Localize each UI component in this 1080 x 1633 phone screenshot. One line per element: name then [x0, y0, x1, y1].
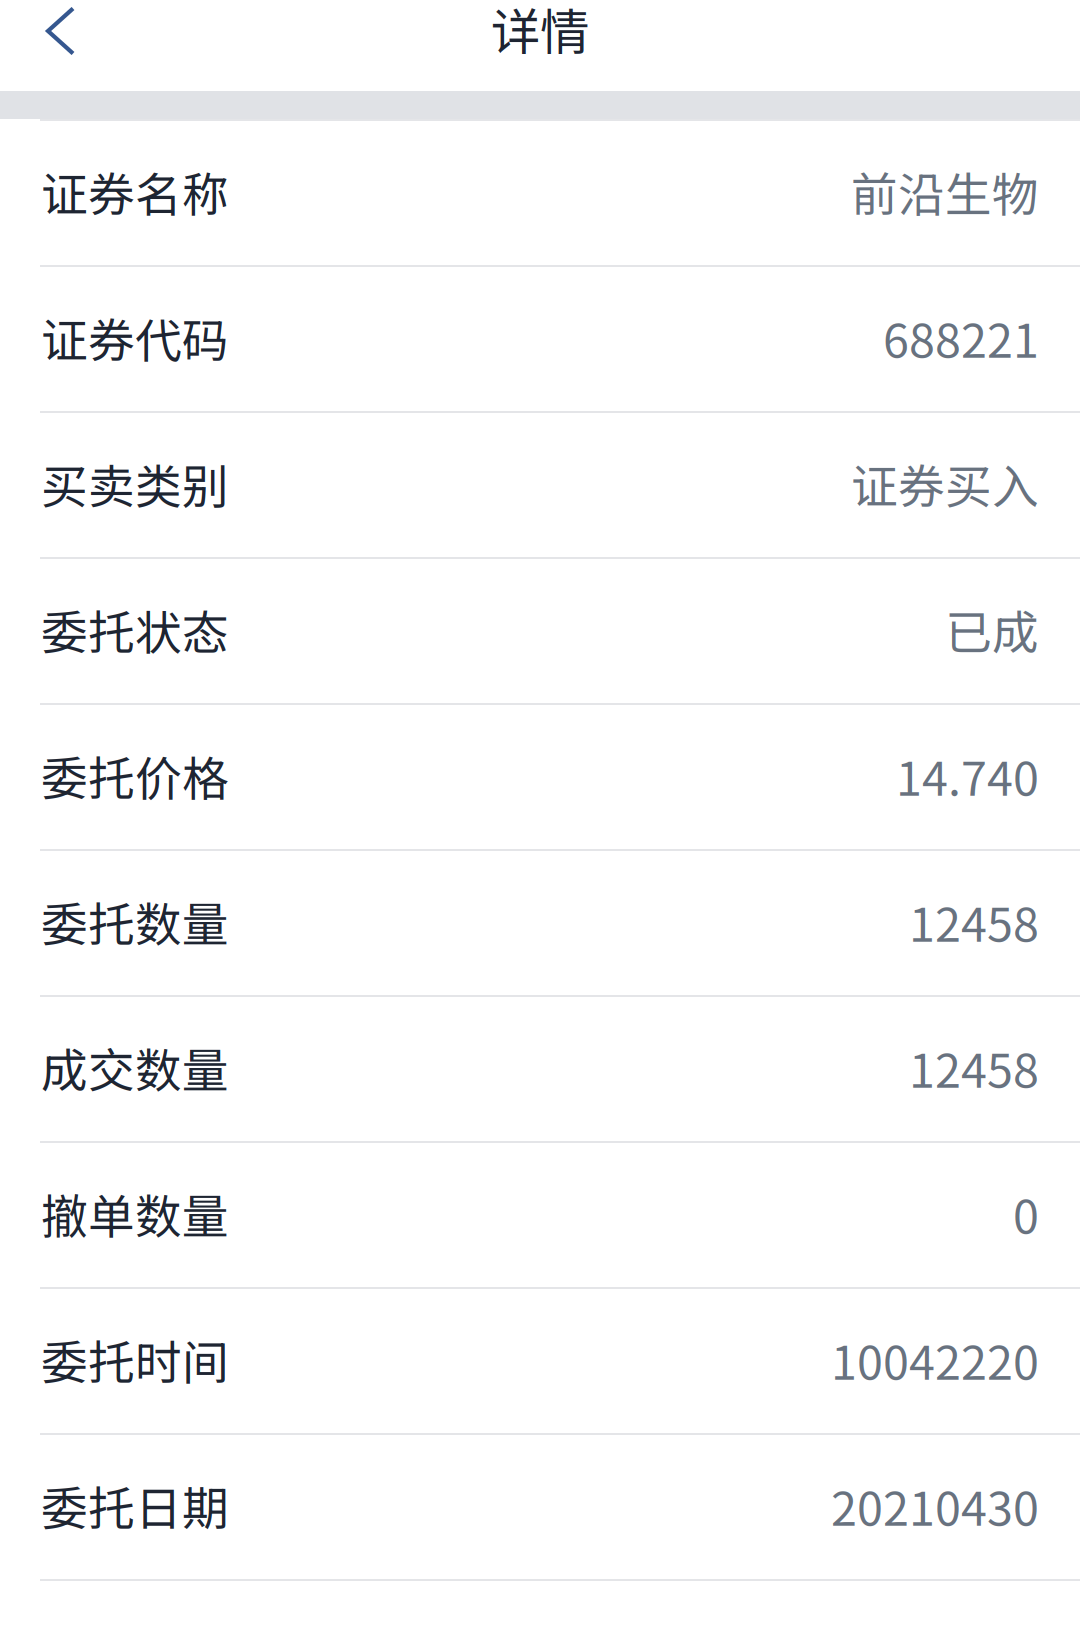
staticText: 委托价格 — [41, 742, 229, 809]
button[interactable]: 委托数量 — [0, 851, 1080, 997]
staticText: 撤单数量 — [41, 1180, 229, 1247]
staticText: 已成 — [945, 596, 1039, 663]
button[interactable]: 返回 — [0, 0, 121, 62]
staticText: 委托日期 — [41, 1472, 229, 1539]
staticText: 688221 — [883, 304, 1039, 371]
staticText: 买卖类别 — [41, 450, 229, 517]
staticText: 委托状态 — [41, 596, 229, 663]
staticText: 证券代码 — [41, 304, 229, 371]
staticText: 详情 — [491, 0, 589, 64]
staticText: 14.740 — [896, 742, 1039, 809]
button[interactable]: 委托价格 — [0, 705, 1080, 851]
staticText: 委托数量 — [41, 888, 229, 955]
button[interactable]: 证券名称 — [0, 119, 1080, 267]
button[interactable]: 委托时间 — [0, 1289, 1080, 1435]
staticText: 成交数量 — [41, 1034, 229, 1101]
staticText: 12458 — [909, 888, 1039, 955]
button[interactable]: 成交数量 — [0, 997, 1080, 1143]
button[interactable]: 买卖类别 — [0, 413, 1080, 559]
button[interactable]: 撤单数量 — [0, 1143, 1080, 1289]
staticText: 证券名称 — [41, 158, 229, 225]
staticText: 12458 — [909, 1034, 1039, 1101]
button[interactable]: 委托日期 — [0, 1435, 1080, 1581]
staticText: 0 — [1013, 1180, 1039, 1247]
staticText: 20210430 — [831, 1472, 1039, 1539]
button[interactable]: 证券代码 — [0, 267, 1080, 413]
staticText: 10042220 — [831, 1326, 1039, 1393]
button[interactable]: 委托状态 — [0, 559, 1080, 705]
staticText: 前沿生物 — [851, 158, 1039, 225]
staticText: 证券买入 — [851, 450, 1039, 517]
staticText: 委托时间 — [41, 1326, 229, 1393]
